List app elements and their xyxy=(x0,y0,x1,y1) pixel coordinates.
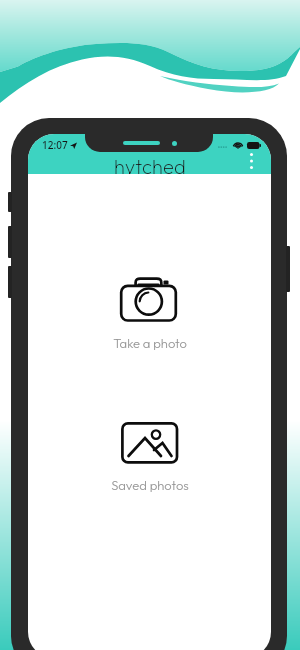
button[interactable]: Take a photo xyxy=(76,278,223,351)
staticText: Saved photos xyxy=(111,477,189,493)
button[interactable]: More options xyxy=(241,148,261,174)
button[interactable]: Saved photos xyxy=(76,422,223,493)
staticText: 12:07 xyxy=(42,138,68,152)
staticText: Take a photo xyxy=(113,335,187,351)
staticText: hytched xyxy=(114,154,186,174)
